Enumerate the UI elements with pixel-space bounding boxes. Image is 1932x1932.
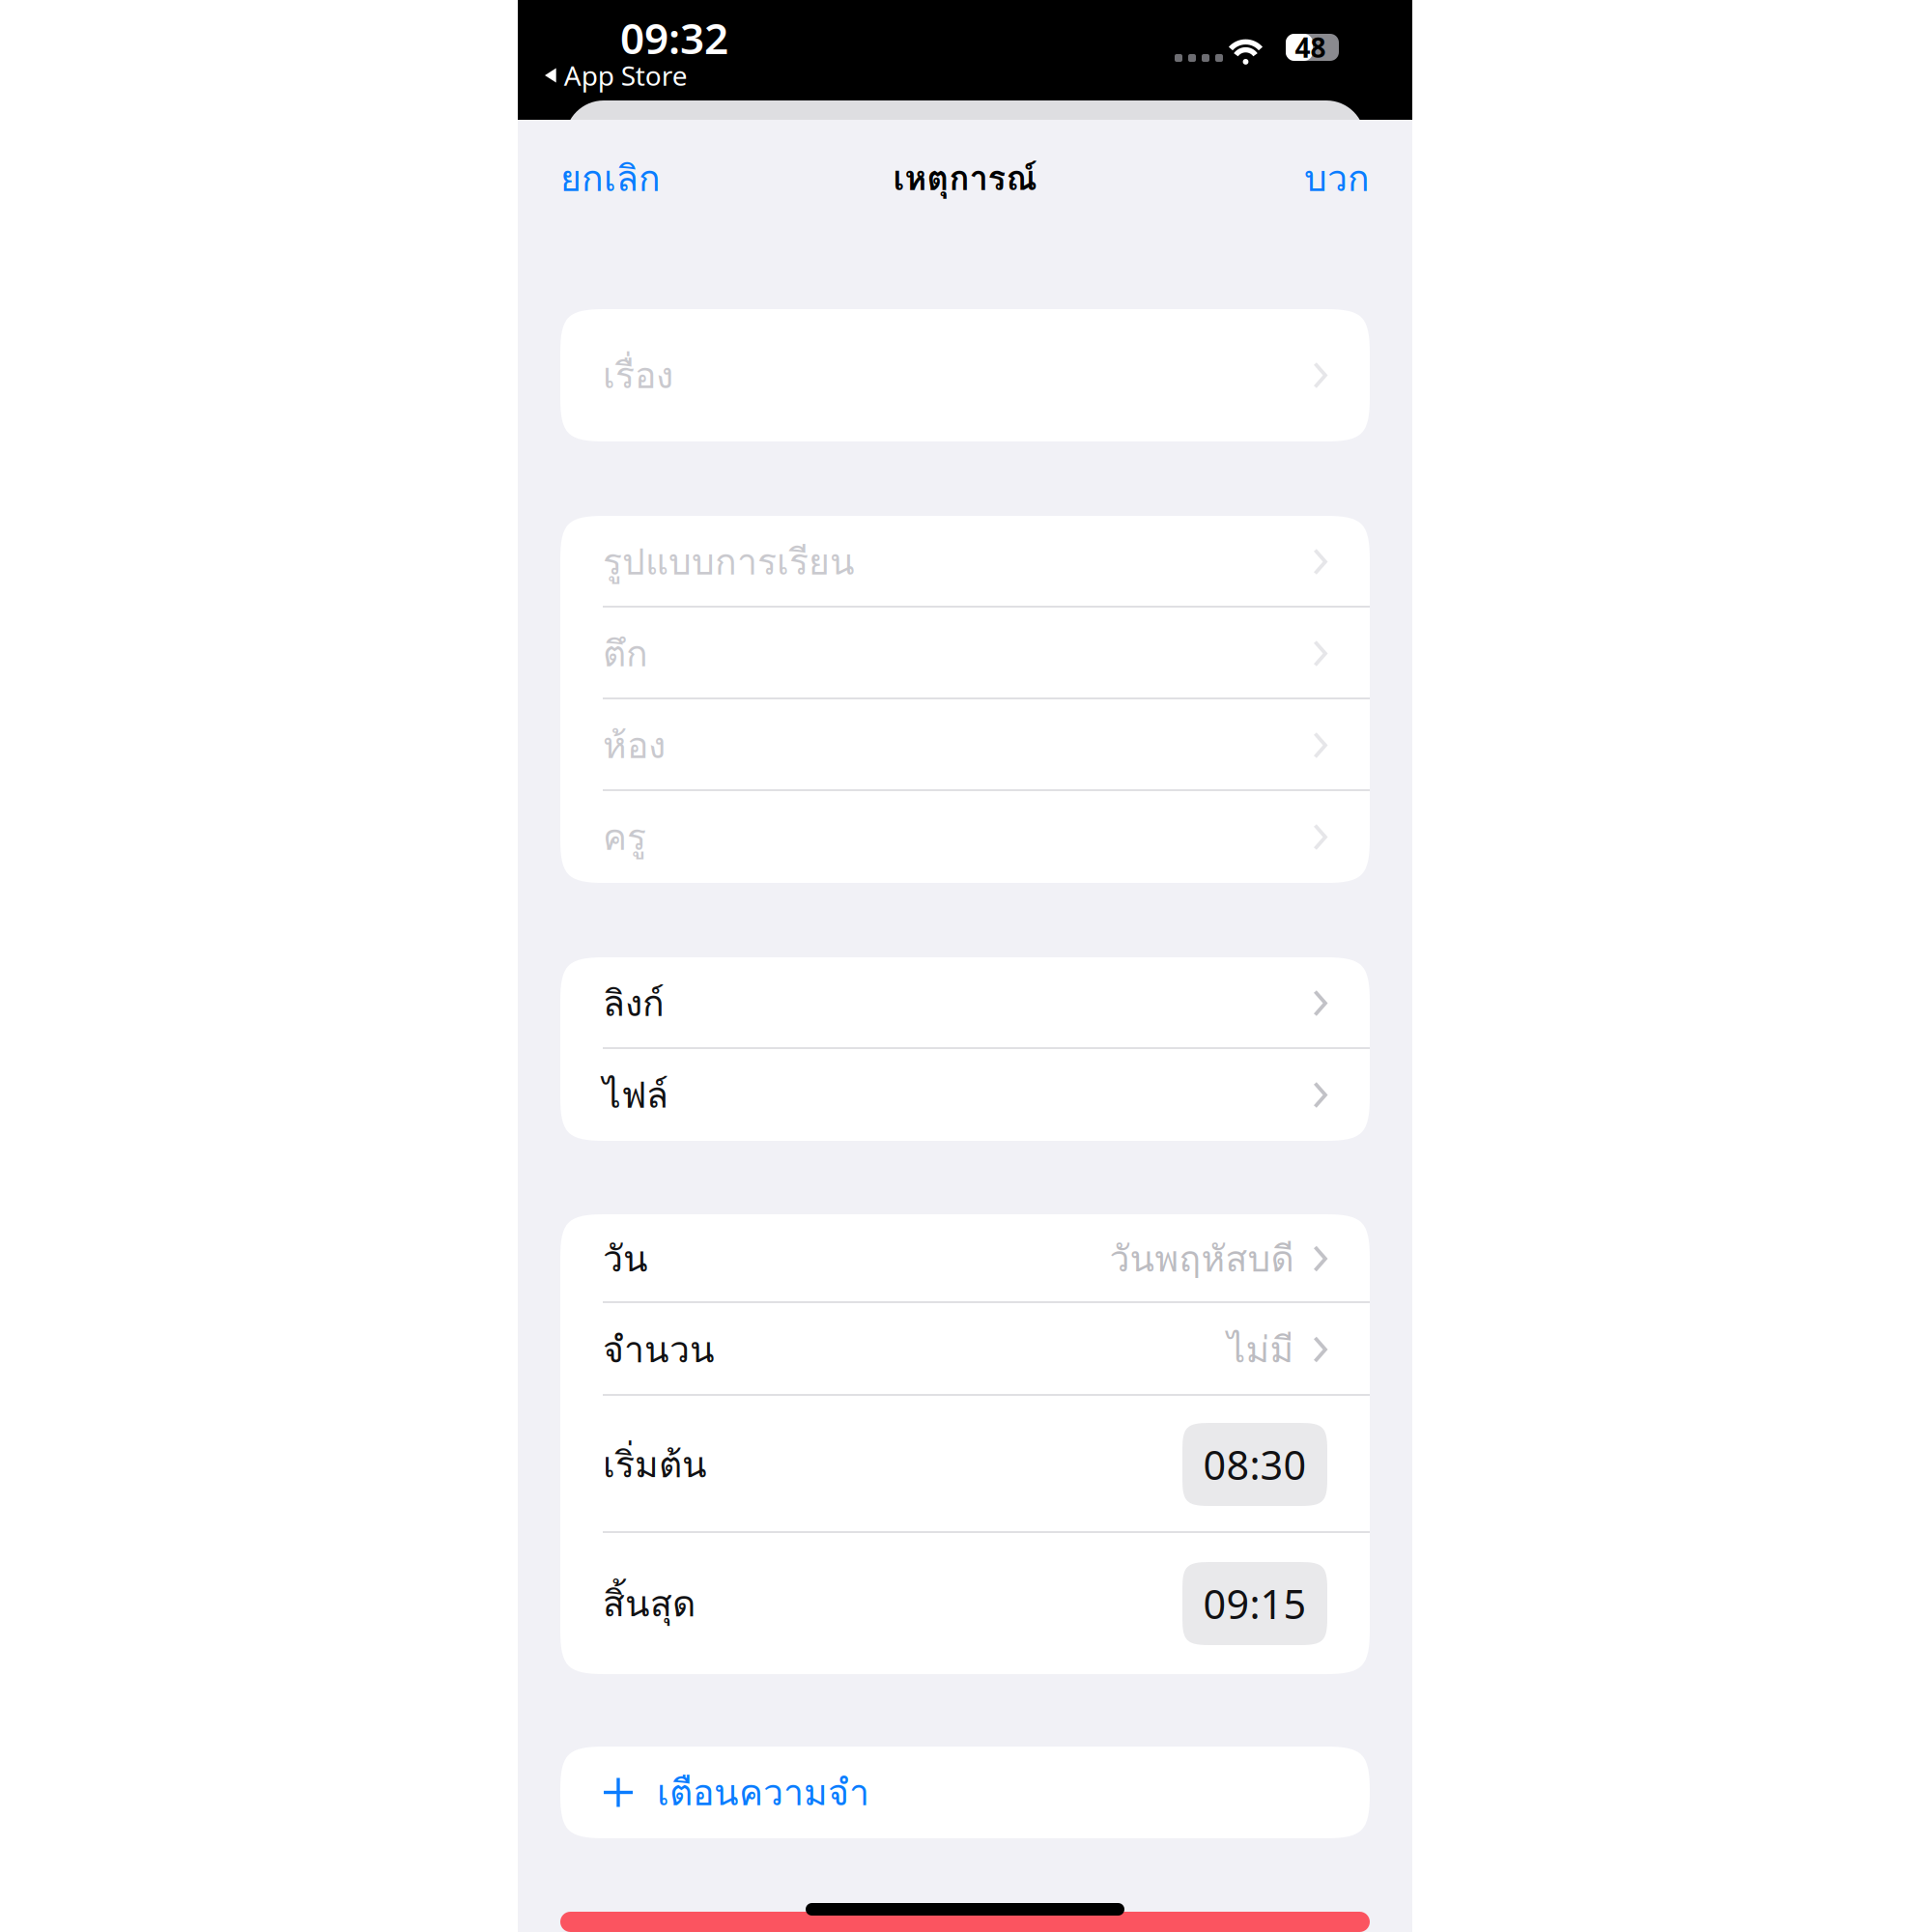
staticText: 09:32	[620, 9, 728, 66]
button[interactable]: 09:15	[1182, 1562, 1327, 1645]
staticText: ไม่มี	[1227, 1322, 1294, 1378]
button[interactable]: จำนวน	[560, 1303, 1370, 1396]
staticText: วันพฤหัสบดี	[1109, 1231, 1294, 1287]
button[interactable]: วัน	[560, 1214, 1370, 1303]
staticText: เตือนความจำ	[657, 1764, 869, 1820]
button[interactable]: 08:30	[1182, 1423, 1327, 1506]
button[interactable]: ห้อง	[560, 699, 1370, 791]
staticText: ห้อง	[603, 717, 666, 773]
staticText: บวก	[1304, 150, 1370, 206]
staticText: ยกเลิก	[560, 150, 661, 206]
staticText: ไฟล์	[603, 1067, 668, 1123]
button[interactable]: ไฟล์	[560, 1049, 1370, 1141]
staticText: App Store	[564, 57, 688, 93]
staticText: รูปแบบการเรียน	[603, 534, 855, 590]
staticText: เริ่มต้น	[603, 1437, 707, 1492]
button[interactable]: เรื่อง	[560, 309, 1370, 441]
staticText: ลิงก์	[603, 975, 665, 1031]
staticText: 08:30	[1203, 1438, 1307, 1491]
button[interactable]: ยกเลิก	[547, 133, 674, 224]
staticText: ครู	[603, 809, 646, 865]
button[interactable]: รูปแบบการเรียน	[560, 516, 1370, 608]
button[interactable]: ลิงก์	[560, 957, 1370, 1049]
staticText: จำนวน	[603, 1322, 715, 1378]
staticText: เหตุการณ์	[893, 152, 1037, 204]
staticText: ตึก	[603, 626, 648, 682]
button[interactable]: เตือนความจำ	[560, 1747, 1370, 1838]
staticText: เรื่อง	[603, 347, 673, 403]
button[interactable]: ครู	[560, 791, 1370, 883]
staticText: 48	[1295, 29, 1326, 65]
button[interactable]: Delete event	[560, 1912, 1370, 1932]
staticText: สิ้นสุด	[603, 1576, 696, 1632]
button[interactable]: ตึก	[560, 608, 1370, 699]
staticText: วัน	[603, 1231, 648, 1287]
staticText: 09:15	[1203, 1577, 1307, 1630]
button[interactable]: บวก	[1291, 133, 1383, 224]
